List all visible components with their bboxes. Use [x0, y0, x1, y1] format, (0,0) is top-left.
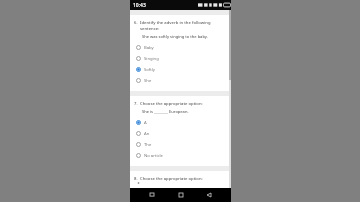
button[interactable]: Softly: [134, 64, 227, 75]
button[interactable]: Back: [203, 189, 215, 201]
button[interactable]: An: [134, 128, 227, 139]
staticText: Choose the appropriate option:: [140, 176, 203, 182]
staticText: Choose the appropriate option:: [140, 101, 203, 107]
staticText: Baby: [144, 45, 154, 51]
staticText: She: [144, 78, 152, 84]
staticText: Identify the adverb in the following sen…: [140, 20, 227, 32]
button[interactable]: Home: [175, 189, 187, 201]
button[interactable]: No article: [134, 150, 227, 161]
staticText: The: [144, 142, 152, 148]
staticText: She is ________ European.: [142, 109, 227, 114]
staticText: Softly: [144, 67, 156, 73]
staticText: 7.: [134, 101, 138, 107]
staticText: An: [144, 131, 150, 137]
button[interactable]: Recents: [146, 189, 158, 201]
staticText: A: [144, 120, 147, 126]
button[interactable]: The: [134, 139, 227, 150]
button[interactable]: She: [134, 75, 227, 86]
staticText: 6.: [134, 20, 138, 26]
button[interactable]: Baby: [134, 42, 227, 53]
button[interactable]: Singing: [134, 53, 227, 64]
staticText: Singing: [144, 56, 159, 62]
staticText: No article: [144, 153, 163, 159]
staticText: She was softly singing to the baby.: [142, 34, 227, 39]
staticText: 8.: [134, 176, 138, 182]
staticText: 10:43: [133, 2, 146, 9]
button[interactable]: A: [134, 117, 227, 128]
